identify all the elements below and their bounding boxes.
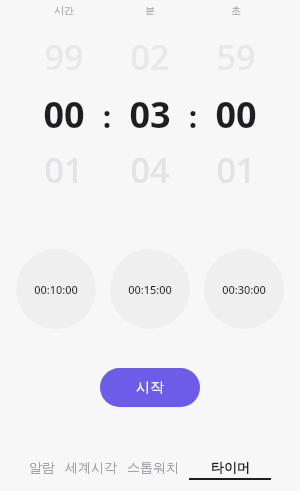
staticText: 알람	[29, 459, 55, 475]
staticText: 00:15:00	[128, 282, 172, 297]
staticText: 스톱워치	[127, 459, 179, 475]
staticText: 분	[108, 4, 192, 17]
staticText: 02	[108, 34, 192, 80]
staticText: 00:30:00	[222, 282, 266, 297]
staticText: :	[187, 96, 199, 137]
staticText: 타이머	[211, 459, 250, 475]
staticText: 00:10:00	[34, 282, 78, 297]
button[interactable]: 99	[22, 20, 106, 220]
button[interactable]: 세계시각	[60, 455, 122, 479]
button[interactable]: 00:15:00	[110, 249, 190, 329]
staticText: 00	[22, 90, 106, 139]
button[interactable]: 00:30:00	[204, 249, 284, 329]
staticText: :	[101, 96, 113, 137]
staticText: 초	[194, 4, 278, 17]
staticText: 세계시각	[65, 459, 117, 475]
button[interactable]: 02	[108, 20, 192, 220]
staticText: 59	[194, 34, 278, 80]
button[interactable]: 타이머	[184, 455, 276, 484]
staticText: 01	[194, 147, 278, 193]
staticText: 00	[194, 90, 278, 139]
staticText: 시간	[22, 4, 106, 17]
button[interactable]: 시작	[100, 368, 200, 407]
button[interactable]: 알람	[24, 455, 60, 479]
button[interactable]: 스톱워치	[122, 455, 184, 479]
staticText: 01	[22, 147, 106, 193]
button[interactable]: 00:10:00	[16, 249, 96, 329]
staticText: 04	[108, 147, 192, 193]
staticText: 99	[22, 34, 106, 80]
button[interactable]: 59	[194, 20, 278, 220]
staticText: 시작	[136, 379, 164, 397]
staticText: 03	[108, 90, 192, 139]
